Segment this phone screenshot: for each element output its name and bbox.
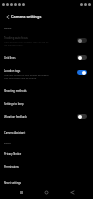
staticText: Add your location to your photos and vid… — [4, 74, 51, 80]
staticText: Privacy Notice — [4, 152, 22, 156]
staticText: Privacy — [4, 142, 11, 145]
button[interactable]: Tracking auto focus — [0, 32, 93, 49]
button[interactable]: Reset settings — [0, 176, 93, 190]
button[interactable]: Camera settings — [11, 11, 42, 22]
button[interactable]: Recent apps — [17, 188, 26, 197]
button[interactable]: Navigate up — [3, 12, 12, 21]
staticText: Camera Assistant — [4, 131, 26, 135]
button[interactable]: Privacy Notice — [0, 147, 93, 161]
staticText: Camera settings — [11, 14, 42, 19]
button[interactable]: Camera Assistant — [0, 126, 93, 140]
button[interactable]: Home — [42, 188, 51, 197]
button[interactable]: Location tags — [0, 65, 93, 82]
staticText: Reset settings — [4, 181, 22, 185]
button[interactable]: Shooting methods — [0, 84, 93, 98]
button[interactable]: Vibration feedback — [0, 110, 93, 124]
staticText: Permissions — [4, 165, 19, 169]
staticText: Tracking auto focus — [4, 36, 28, 40]
staticText: Grid lines — [4, 56, 16, 60]
staticText: Shooting methods — [4, 89, 27, 93]
button[interactable]: Settings to keep — [0, 97, 93, 111]
button[interactable]: Permissions — [0, 160, 93, 174]
staticText: Vibration feedback — [4, 115, 27, 119]
staticText: General — [4, 27, 12, 30]
button[interactable] — [0, 52, 93, 66]
staticText: Location tags — [4, 69, 21, 73]
staticText: Settings to keep — [4, 102, 24, 106]
staticText: Track and focus on a subject that you ta… — [4, 41, 51, 47]
button[interactable]: Back — [68, 188, 77, 197]
